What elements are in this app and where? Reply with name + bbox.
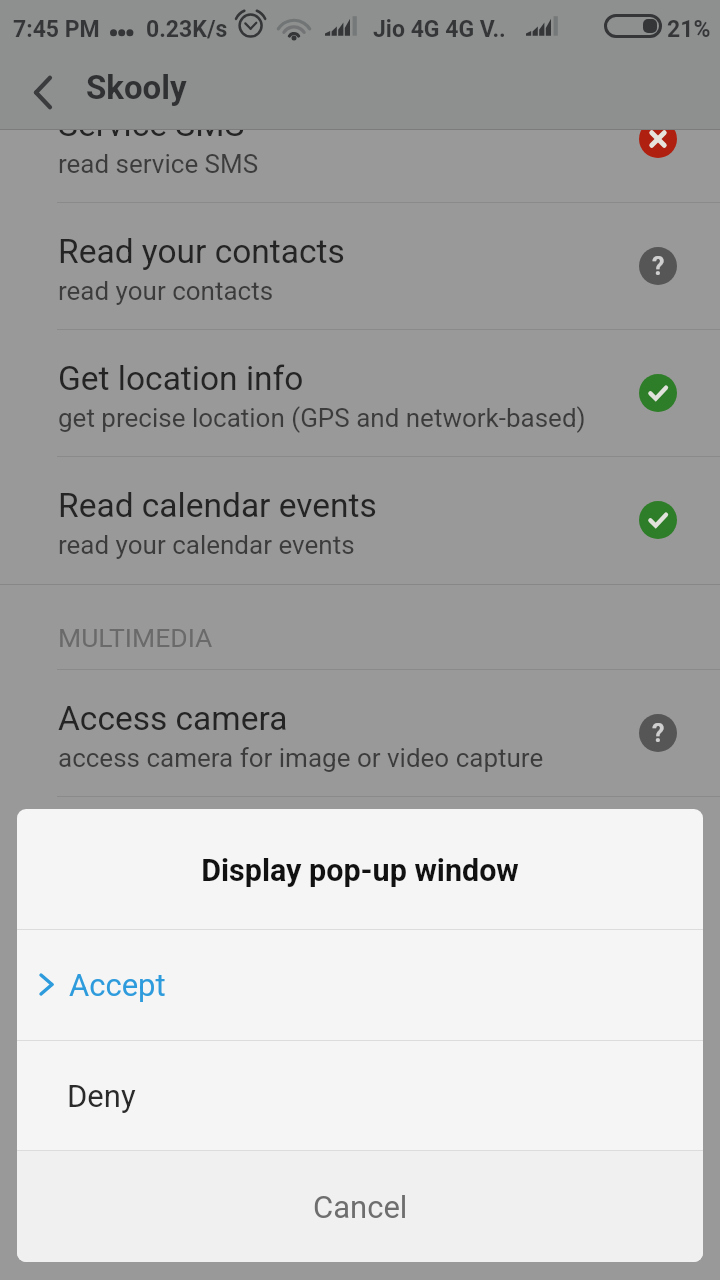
- button[interactable]: Accept: [17, 930, 703, 1040]
- staticText: Read calendar events: [58, 486, 377, 525]
- staticText: Jio 4G 4G V..: [373, 16, 506, 43]
- button[interactable]: Cancel: [17, 1151, 703, 1262]
- staticText: read your contacts: [58, 276, 274, 306]
- staticText: 0.23K/s: [146, 16, 228, 43]
- staticText: ?: [652, 252, 665, 281]
- staticText: read your calendar events: [58, 530, 355, 560]
- button[interactable]: Access camera: [0, 670, 720, 796]
- button[interactable]: Back: [10, 55, 76, 129]
- staticText: Skooly: [86, 68, 187, 107]
- staticText: read service SMS: [58, 149, 259, 179]
- staticText: Display pop-up window: [201, 853, 519, 889]
- staticText: Get location info: [58, 359, 304, 398]
- staticText: ?: [652, 719, 665, 748]
- staticText: get precise location (GPS and network-ba…: [58, 403, 586, 433]
- button[interactable]: Read your contacts: [0, 203, 720, 329]
- staticText: access camera for image or video capture: [58, 743, 544, 773]
- button[interactable]: Deny: [17, 1041, 703, 1150]
- staticText: Accept: [69, 967, 166, 1003]
- staticText: 7:45 PM: [13, 16, 100, 43]
- staticText: Cancel: [313, 1189, 408, 1225]
- staticText: MULTIMEDIA: [58, 622, 213, 653]
- button[interactable]: Service SMS: [0, 76, 720, 202]
- staticText: Access camera: [58, 699, 288, 738]
- staticText: 21%: [667, 16, 711, 43]
- button[interactable]: Read calendar events: [0, 457, 720, 583]
- staticText: Service SMS: [58, 105, 245, 144]
- staticText: Read your contacts: [58, 232, 345, 271]
- staticText: Deny: [67, 1078, 136, 1114]
- button[interactable]: Get location info: [0, 330, 720, 456]
